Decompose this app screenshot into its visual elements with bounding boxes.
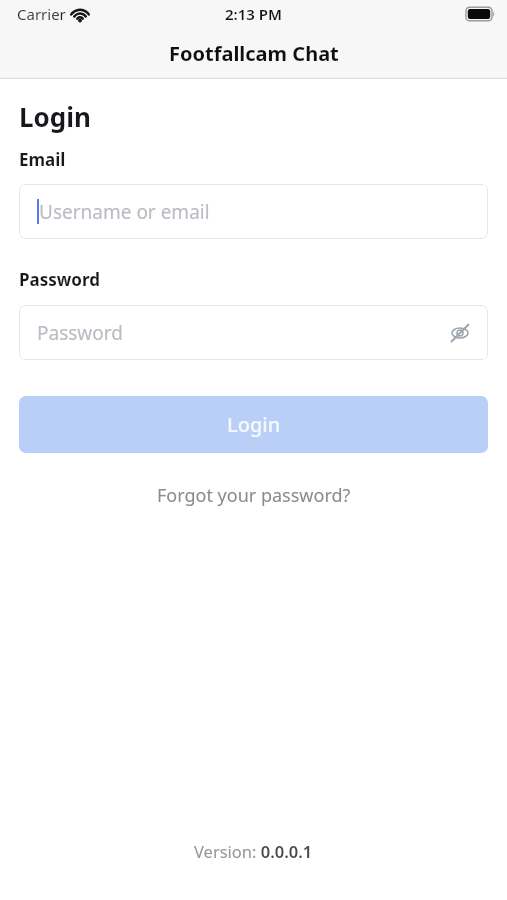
staticText: Password bbox=[19, 268, 100, 291]
button[interactable]: Password bbox=[19, 305, 488, 360]
staticText: Username or email bbox=[39, 199, 210, 225]
staticText: Login bbox=[227, 411, 281, 438]
staticText: Footfallcam Chat bbox=[169, 40, 339, 67]
staticText: Email bbox=[19, 148, 66, 171]
staticText: Version: 0.0.0.1 bbox=[194, 840, 313, 862]
button[interactable]: Forgot your password? bbox=[157, 483, 351, 508]
staticText: Carrier bbox=[17, 4, 66, 24]
staticText: Password bbox=[37, 320, 123, 346]
staticText: 2:13 PM bbox=[225, 4, 282, 24]
staticText: Login bbox=[19, 99, 91, 134]
button[interactable]: Username or email bbox=[19, 184, 488, 239]
button[interactable]: Login bbox=[19, 396, 488, 453]
